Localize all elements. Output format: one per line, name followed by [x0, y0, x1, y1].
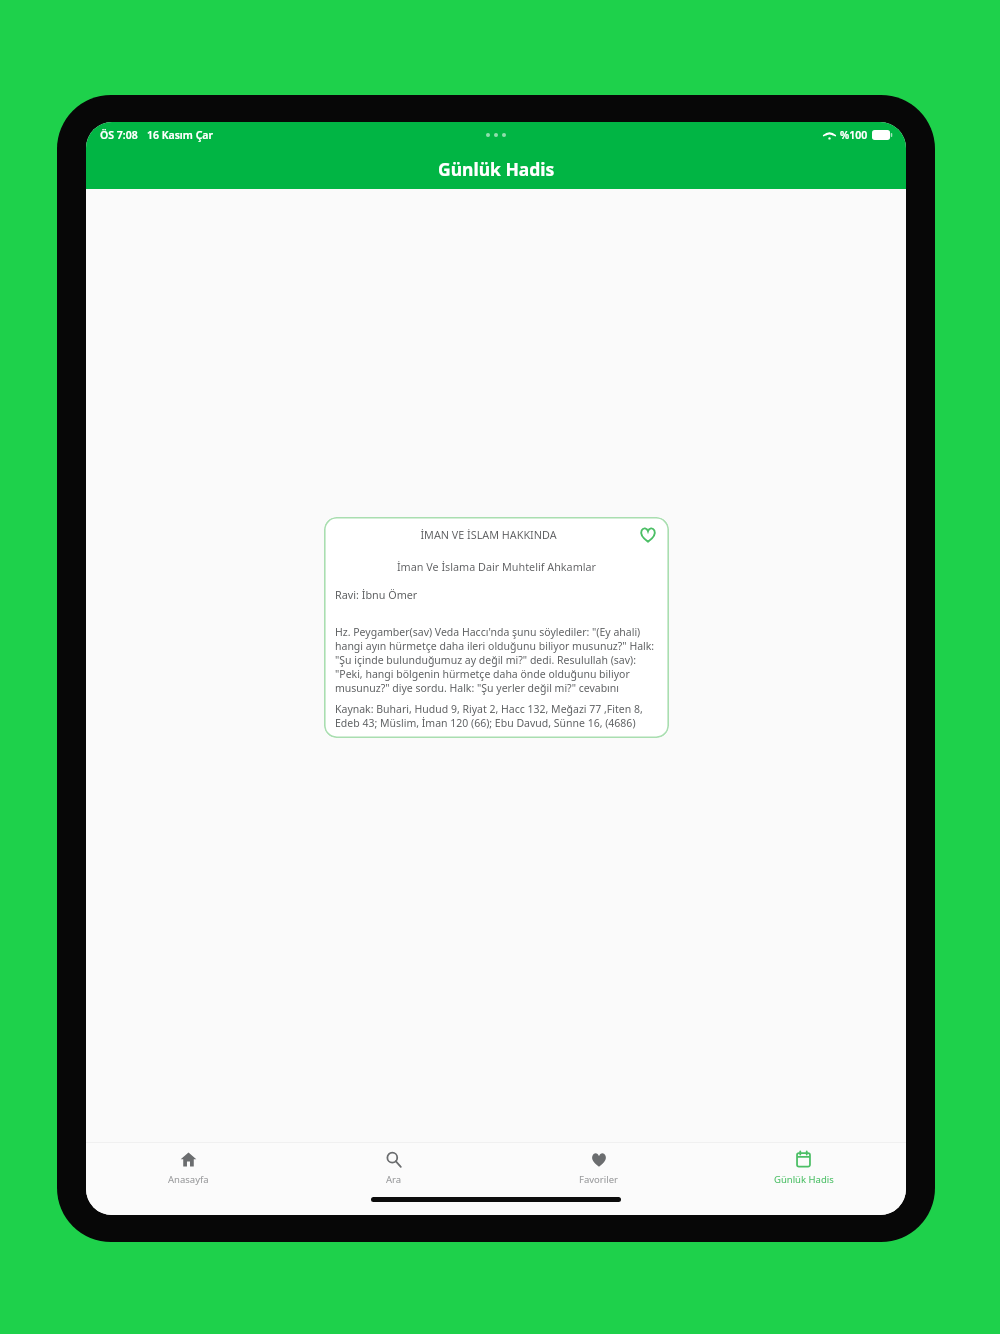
- staticText: İMAN VE İSLAM HAKKINDA: [335, 527, 642, 542]
- button[interactable]: Günlük Hadis: [701, 1148, 906, 1189]
- staticText: Hz. Peygamber(sav) Veda Haccı'nda şunu s…: [335, 625, 658, 695]
- staticText: Favoriler: [579, 1173, 618, 1186]
- button[interactable]: İMAN VE İSLAM HAKKINDA: [324, 517, 669, 738]
- button[interactable]: Favorilere ekle: [638, 525, 658, 545]
- button[interactable]: Ara: [291, 1148, 496, 1189]
- staticText: Ravi: İbnu Ömer: [335, 587, 418, 602]
- staticText: 16 Kasım Çar: [147, 128, 214, 142]
- staticText: Ara: [386, 1173, 402, 1186]
- button[interactable]: Favoriler: [496, 1149, 701, 1189]
- button[interactable]: Anasayfa: [86, 1148, 291, 1189]
- staticText: İman Ve İslama Dair Muhtelif Ahkamlar: [335, 559, 658, 574]
- staticText: Günlük Hadis: [438, 157, 555, 181]
- staticText: Kaynak: Buhari, Hudud 9, Riyat 2, Hacc 1…: [335, 702, 658, 730]
- staticText: %100: [840, 128, 868, 142]
- staticText: Günlük Hadis: [774, 1173, 834, 1186]
- staticText: Anasayfa: [168, 1173, 209, 1186]
- staticText: ÖS 7:08: [100, 128, 138, 142]
